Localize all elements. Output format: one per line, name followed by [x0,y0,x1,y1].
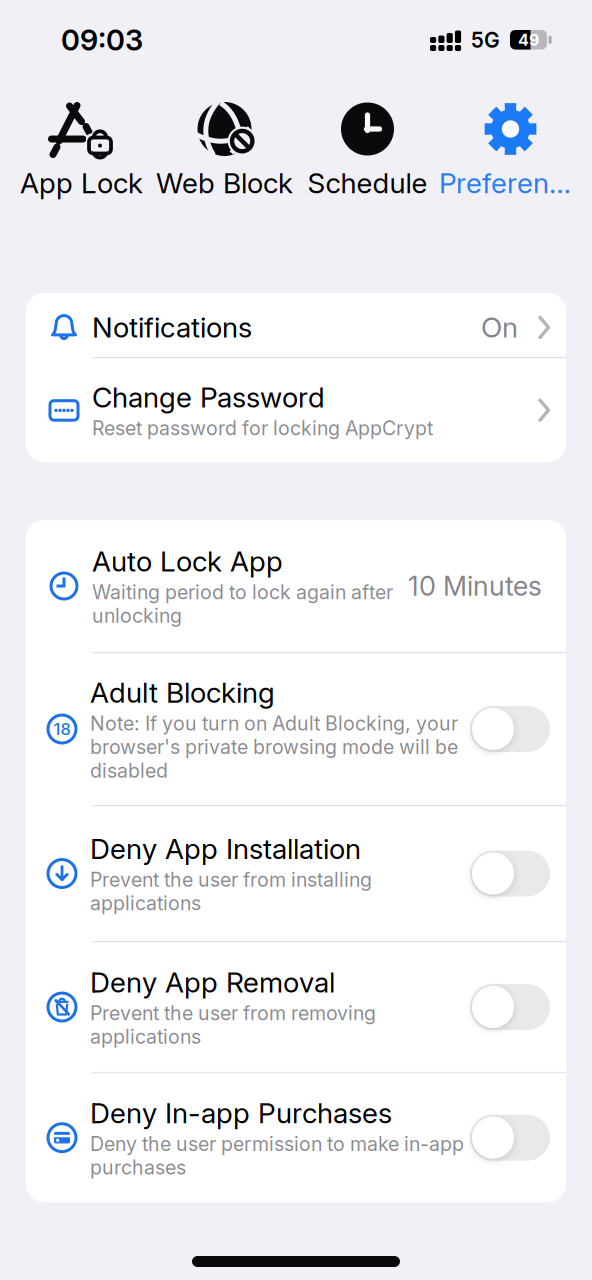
button[interactable]: Preferences [439,99,582,200]
staticText: On [481,310,518,344]
staticText: 49 [518,30,539,50]
staticText: App Lock [20,166,143,200]
button[interactable]: Deny App Removal [470,984,550,1030]
button[interactable]: Schedule [296,99,439,200]
button[interactable]: Deny In-app Purchases [470,1115,550,1161]
staticText: Deny App Installation [90,832,361,866]
staticText: Adult Blocking [90,676,275,710]
staticText: Note: If you turn on Adult Blocking, you… [90,712,458,782]
button[interactable]: Notifications [26,293,566,357]
staticText: 5G [471,27,500,53]
button[interactable]: Adult Blocking [470,706,550,752]
button[interactable]: Change Password [26,358,566,462]
button[interactable]: Deny In-app Purchases [24,1073,568,1202]
button[interactable]: Deny App Installation [470,850,550,896]
staticText: Deny App Removal [90,965,335,999]
staticText: 10 Minutes [408,570,542,602]
staticText: 09:03 [61,22,143,58]
staticText: Prevent the user from removing applicati… [90,1001,376,1049]
button[interactable]: App Lock [10,99,153,200]
button[interactable]: Deny App Removal [24,942,568,1072]
staticText: Auto Lock App [92,544,283,578]
staticText: Notifications [92,310,252,344]
staticText: Waiting period to lock again after unloc… [92,580,393,628]
staticText: Schedule [307,166,427,200]
button[interactable]: Web Block [153,99,296,200]
staticText: Reset password for locking AppCrypt [92,416,433,440]
staticText: Prevent the user from installing applica… [90,868,372,915]
staticText: Deny the user permission to make in-app … [90,1132,464,1179]
button[interactable]: Auto Lock App [26,520,566,652]
staticText: Deny In-app Purchases [90,1096,392,1130]
button[interactable]: Deny App Installation [24,806,568,941]
staticText: Preferences [439,166,582,200]
staticText: Change Password [92,380,325,414]
staticText: 18 [53,719,70,739]
button[interactable]: 18 [24,653,568,805]
staticText: Web Block [156,166,293,200]
